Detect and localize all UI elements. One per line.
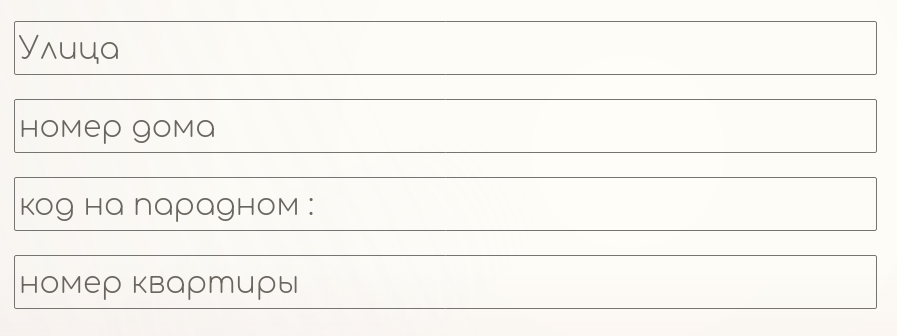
staticText: номер квартиры (19, 267, 300, 300)
staticText: номер дома (19, 111, 216, 144)
button[interactable]: код на парадном : (14, 177, 877, 231)
button[interactable]: номер квартиры (14, 255, 877, 309)
button[interactable]: Улица (14, 21, 877, 75)
button[interactable]: номер дома (14, 99, 877, 153)
staticText: Улица (19, 33, 120, 66)
staticText: код на парадном : (19, 189, 315, 222)
